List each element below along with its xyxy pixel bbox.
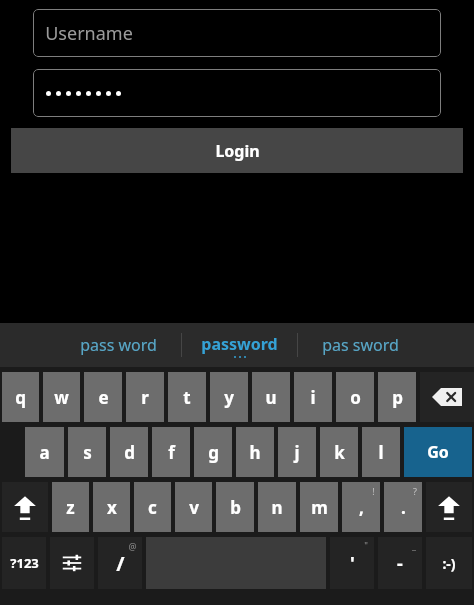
- button[interactable]: /: [98, 537, 142, 589]
- staticText: r: [141, 386, 149, 409]
- button[interactable]: z: [52, 482, 89, 532]
- staticText: ': [350, 551, 355, 576]
- staticText: u: [265, 386, 277, 409]
- button[interactable]: s: [68, 427, 106, 477]
- staticText: z: [66, 496, 75, 519]
- button[interactable]: p: [378, 372, 416, 422]
- staticText: h: [249, 441, 261, 464]
- button[interactable]: h: [236, 427, 274, 477]
- button[interactable]: Keyboard settings: [50, 537, 94, 589]
- staticText: w: [54, 386, 69, 409]
- staticText: x: [107, 496, 117, 519]
- button[interactable]: [33, 69, 441, 117]
- staticText: _: [412, 539, 416, 551]
- button[interactable]: c: [134, 482, 171, 532]
- staticText: password: [201, 333, 278, 355]
- staticText: y: [224, 386, 234, 409]
- staticText: !: [372, 485, 375, 497]
- button[interactable]: u: [252, 372, 290, 422]
- staticText: a: [39, 441, 50, 464]
- button[interactable]: Backspace: [420, 372, 474, 422]
- button[interactable]: v: [175, 482, 212, 532]
- staticText: o: [350, 386, 361, 409]
- button[interactable]: e: [84, 372, 122, 422]
- staticText: d: [124, 441, 135, 464]
- staticText: @: [128, 540, 137, 552]
- button[interactable]: m: [300, 482, 338, 532]
- button[interactable]: x: [93, 482, 130, 532]
- button[interactable]: o: [336, 372, 374, 422]
- staticText: Username: [45, 21, 133, 46]
- staticText: i: [310, 386, 316, 409]
- button[interactable]: n: [258, 482, 296, 532]
- staticText: m: [311, 496, 328, 519]
- button[interactable]: t: [168, 372, 206, 422]
- button[interactable]: k: [320, 427, 358, 477]
- staticText: Login: [215, 140, 260, 162]
- button[interactable]: Shift: [2, 482, 48, 532]
- staticText: q: [15, 386, 26, 409]
- staticText: Go: [427, 441, 449, 463]
- button[interactable]: y: [210, 372, 248, 422]
- button[interactable]: -: [378, 537, 422, 589]
- staticText: p: [392, 386, 403, 409]
- button[interactable]: ': [330, 537, 374, 589]
- staticText: s: [83, 441, 92, 464]
- staticText: /: [116, 550, 125, 577]
- staticText: pass word: [80, 334, 157, 356]
- staticText: e: [98, 386, 109, 409]
- button[interactable]: q: [2, 372, 39, 422]
- staticText: :-): [442, 554, 456, 573]
- staticText: ,: [359, 496, 364, 519]
- staticText: ": [364, 539, 368, 551]
- button[interactable]: j: [278, 427, 316, 477]
- staticText: b: [230, 496, 241, 519]
- staticText: l: [378, 441, 384, 464]
- staticText: k: [334, 441, 345, 464]
- button[interactable]: Username: [33, 9, 441, 57]
- button[interactable]: :-): [426, 537, 472, 589]
- button[interactable]: r: [126, 372, 164, 422]
- staticText: t: [183, 386, 191, 409]
- button[interactable]: i: [294, 372, 332, 422]
- button[interactable]: g: [194, 427, 232, 477]
- button[interactable]: .: [384, 482, 422, 532]
- button[interactable]: f: [152, 427, 190, 477]
- staticText: v: [189, 496, 199, 519]
- staticText: ?123: [10, 554, 39, 572]
- button[interactable]: ,: [342, 482, 380, 532]
- staticText: g: [208, 441, 219, 464]
- staticText: -: [397, 551, 403, 576]
- button[interactable]: password: [182, 323, 297, 367]
- staticText: c: [148, 496, 157, 519]
- button[interactable]: w: [43, 372, 80, 422]
- button[interactable]: d: [110, 427, 148, 477]
- staticText: .: [401, 496, 406, 519]
- button[interactable]: Login: [11, 128, 463, 173]
- staticText: f: [168, 441, 175, 464]
- button[interactable]: l: [362, 427, 400, 477]
- staticText: n: [271, 496, 283, 519]
- button[interactable]: a: [25, 427, 64, 477]
- button[interactable]: Shift: [426, 482, 472, 532]
- button[interactable]: b: [216, 482, 254, 532]
- staticText: ?: [413, 485, 417, 497]
- button[interactable]: ?123: [2, 537, 46, 589]
- button[interactable]: pass word: [56, 323, 181, 367]
- button[interactable]: pas sword: [298, 323, 423, 367]
- staticText: pas sword: [322, 334, 399, 356]
- staticText: j: [294, 441, 300, 464]
- button[interactable]: Go: [404, 427, 472, 477]
